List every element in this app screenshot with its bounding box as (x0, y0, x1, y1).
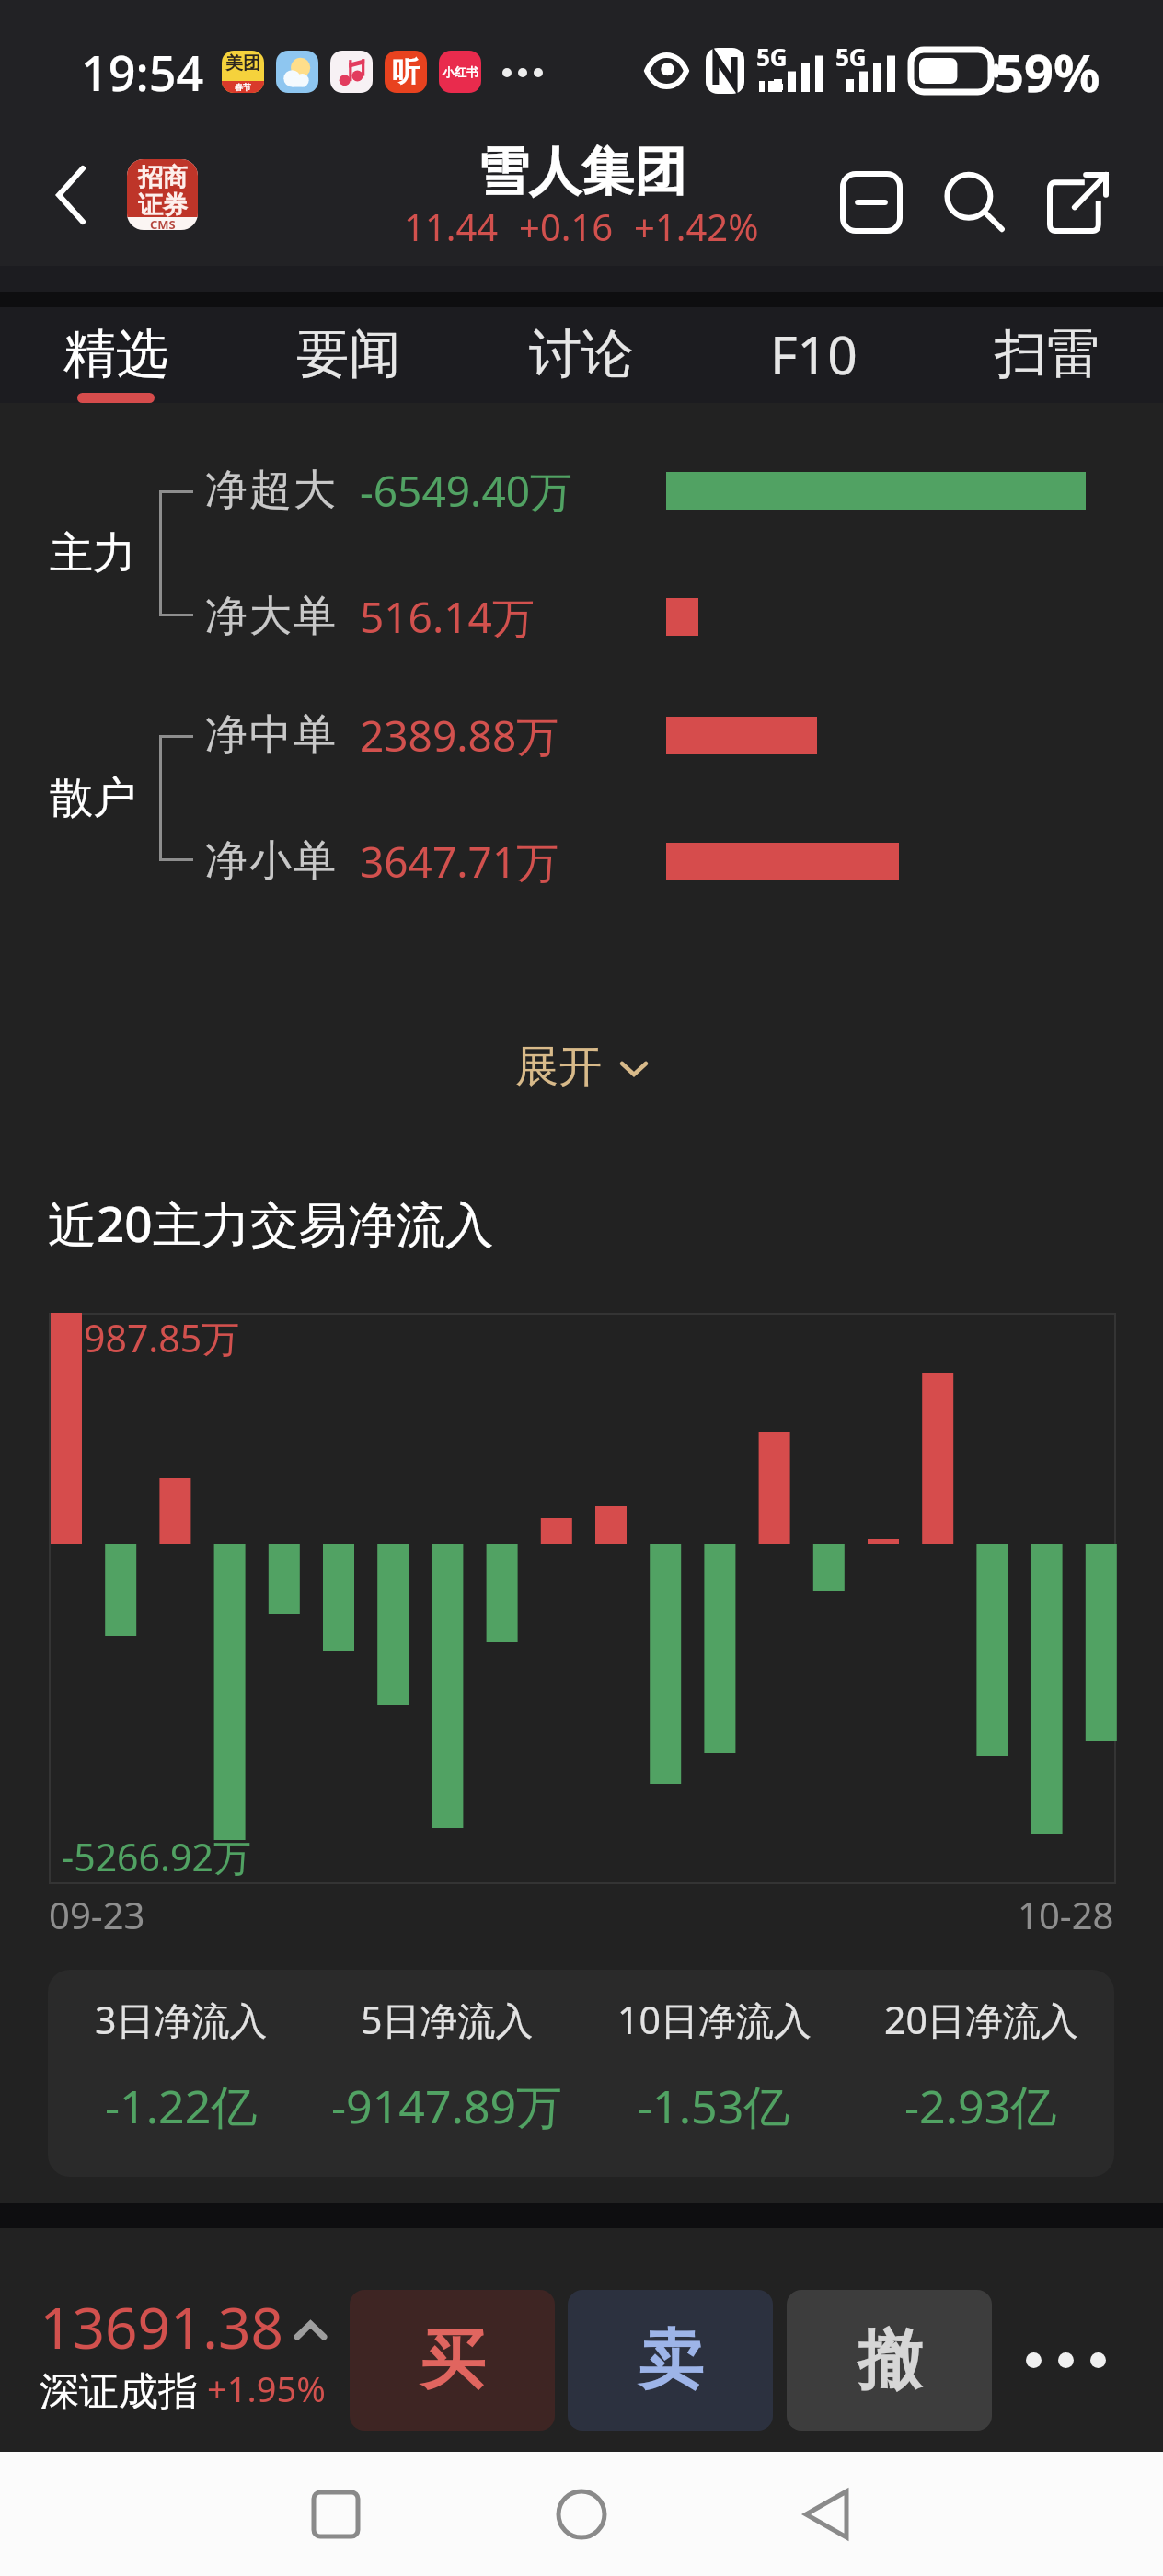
button[interactable]: Minimize (831, 162, 912, 243)
staticText: 2389.88万 (360, 707, 559, 765)
button[interactable]: Home (522, 2455, 641, 2574)
staticText: 19:54 (81, 40, 204, 105)
button[interactable]: Back (30, 155, 111, 236)
button[interactable]: Share (1038, 162, 1119, 243)
staticText: 净中单 (204, 708, 337, 762)
button[interactable]: More (1008, 2290, 1123, 2431)
staticText: F10 (770, 318, 858, 390)
button[interactable]: 20日净流入 (847, 1970, 1114, 2177)
staticText: 10-28 (1018, 1890, 1114, 1939)
staticText: 春节 (235, 82, 251, 92)
staticText: 要闻 (296, 321, 401, 387)
button[interactable]: 3日净流入 (48, 1970, 314, 2177)
staticText: +0.16 (519, 201, 614, 251)
staticText: 3日净流入 (95, 1994, 268, 2045)
staticText: CMS (150, 216, 176, 230)
staticText: 10日净流入 (617, 1994, 812, 2045)
staticText: 展开 (515, 1040, 602, 1094)
staticText: 09-23 (49, 1890, 145, 1939)
button[interactable]: 主力 (50, 525, 136, 581)
staticText: 主力 (50, 526, 136, 581)
staticText: 59% (995, 37, 1100, 107)
staticText: -5266.92万 (62, 1831, 251, 1882)
staticText: 20日净流入 (884, 1994, 1078, 2045)
staticText: -2.93亿 (904, 2075, 1057, 2137)
staticText: 净大单 (204, 590, 337, 643)
staticText: 招商 (138, 162, 188, 193)
staticText: 证券 (138, 190, 188, 221)
staticText: 13691.38 (40, 2288, 283, 2365)
button[interactable]: 散户 (50, 770, 136, 825)
button[interactable]: 5日净流入 (314, 1970, 581, 2177)
button[interactable]: Recents (276, 2455, 396, 2574)
staticText: +1.42% (634, 201, 759, 251)
button[interactable]: 讨论 (465, 307, 697, 403)
staticText: 5G (756, 40, 788, 73)
staticText: 987.85万 (84, 1312, 240, 1363)
staticText: 讨论 (529, 321, 634, 387)
staticText: 美团 (225, 52, 260, 75)
button[interactable]: 10日净流入 (581, 1970, 847, 2177)
staticText: 净小单 (204, 834, 337, 888)
button[interactable]: F10 (697, 307, 930, 403)
staticText: +1.95% (207, 2364, 326, 2412)
button[interactable]: 卖 (568, 2290, 773, 2431)
staticText: 5G (835, 40, 867, 73)
button[interactable]: 要闻 (232, 307, 465, 403)
button[interactable]: Search (934, 162, 1015, 243)
staticText: 5日净流入 (361, 1994, 534, 2045)
staticText: 516.14万 (360, 588, 535, 646)
staticText: 雪人集团 (477, 139, 686, 205)
button[interactable]: 买 (350, 2290, 555, 2431)
button[interactable]: 精选 (0, 307, 232, 403)
button[interactable]: CMS logo (127, 159, 198, 230)
staticText: 散户 (50, 771, 136, 825)
staticText: 买 (420, 2320, 485, 2401)
button[interactable]: 展开 (488, 1023, 675, 1110)
staticText: 精选 (63, 321, 168, 387)
staticText: 撤 (858, 2320, 922, 2401)
staticText: -9147.89万 (331, 2075, 563, 2137)
staticText: 净超大 (204, 464, 337, 517)
staticText: 11.44 (404, 201, 499, 251)
staticText: -1.22亿 (105, 2075, 258, 2137)
staticText: -6549.40万 (360, 462, 573, 520)
staticText: 卖 (639, 2320, 703, 2401)
staticText: -1.53亿 (638, 2075, 790, 2137)
button[interactable]: 撤 (787, 2290, 992, 2431)
button[interactable]: 扫雷 (930, 307, 1163, 403)
staticText: 扫雷 (995, 321, 1100, 387)
staticText: 深证成指 (40, 2367, 198, 2417)
staticText: 听 (392, 54, 420, 89)
staticText: 3647.71万 (360, 833, 559, 891)
staticText: 小红书 (443, 64, 478, 79)
staticText: 近20主力交易净流入 (48, 1190, 494, 1256)
button[interactable]: Back (766, 2455, 886, 2574)
button[interactable]: 13691.38 (40, 2288, 329, 2417)
